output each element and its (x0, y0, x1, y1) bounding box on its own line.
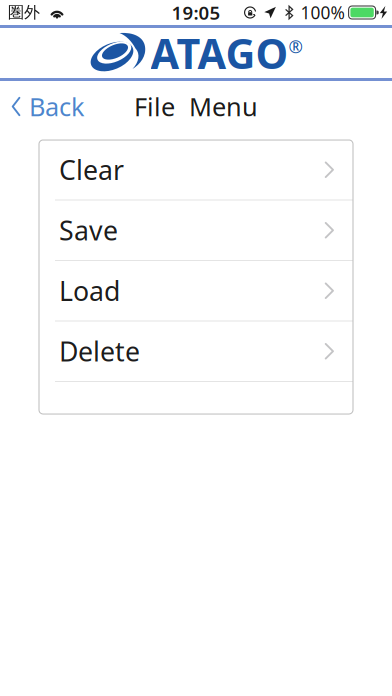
staticText: Save (59, 212, 118, 248)
staticText: Back (29, 90, 85, 123)
staticText: 100% (301, 1, 345, 24)
staticText: ATAGO (150, 26, 288, 80)
staticText: Delete (59, 333, 140, 369)
staticText: Load (59, 273, 120, 308)
staticText: 圏外 (8, 3, 40, 22)
staticText: Clear (59, 152, 124, 187)
staticText: 19:05 (171, 0, 220, 25)
button[interactable]: Back (0, 84, 97, 128)
button[interactable]: Load (39, 261, 353, 321)
button[interactable]: Clear (39, 140, 353, 200)
staticText: File Menu (134, 90, 258, 123)
staticText: ® (288, 35, 302, 58)
button[interactable]: Delete (39, 321, 353, 382)
button[interactable]: Save (39, 200, 353, 261)
